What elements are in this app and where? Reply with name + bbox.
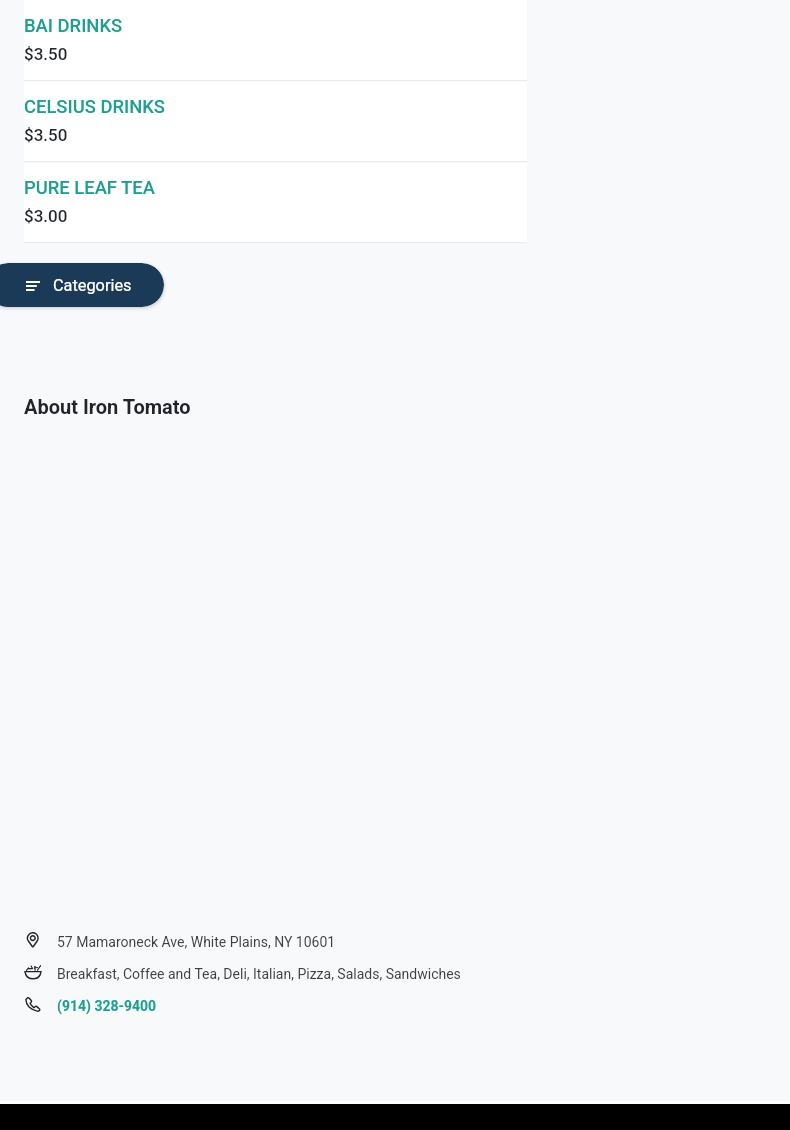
staticText: $3.50 [24,125,68,145]
button[interactable]: BAI DRINKS [24,0,527,81]
staticText: PURE LEAF TEA [24,177,155,199]
staticText: CELSIUS DRINKS [24,96,166,118]
button[interactable]: Cuisines [24,964,524,988]
other: Call restaurant [24,995,42,1013]
other: Cuisines [24,963,42,981]
staticText: Categories [53,276,132,295]
button[interactable]: Categories [0,263,164,307]
staticText: (914) 328-9400 [57,998,157,1014]
staticText: BAI DRINKS [24,15,123,37]
button[interactable]: Call restaurant [24,996,524,1020]
staticText: Breakfast, Coffee and Tea, Deli, Italian… [57,966,461,982]
button[interactable]: PURE LEAF TEA [24,163,527,243]
staticText: 57 Mamaroneck Ave, White Plains, NY 1060… [57,934,336,950]
button[interactable]: Address [24,932,524,956]
staticText: $3.00 [24,206,68,226]
button[interactable]: CELSIUS DRINKS [24,82,527,162]
staticText: About Iron Tomato [24,395,191,418]
staticText: $3.50 [24,44,68,64]
other: Address [24,931,42,949]
